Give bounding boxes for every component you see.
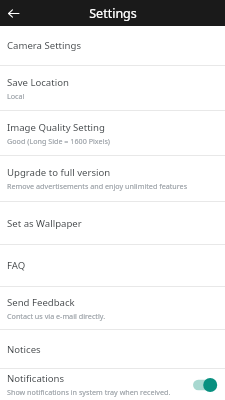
button[interactable]: FAQ — [0, 245, 225, 286]
staticText: Image Quality Setting — [7, 121, 105, 134]
button[interactable]: Set as Wallpaper — [0, 202, 225, 244]
staticText: Save Location — [7, 76, 69, 89]
button[interactable]: Camera Settings — [0, 26, 225, 65]
button[interactable]: Back — [0, 0, 26, 26]
button[interactable]: Send Feedback — [0, 287, 225, 329]
staticText: Show notifications in system tray when r… — [7, 387, 171, 397]
staticText: Notices — [7, 343, 41, 356]
staticText: Good (Long Side = 1600 Pixels) — [7, 136, 111, 146]
staticText: Upgrade to full version — [7, 166, 111, 179]
button[interactable]: Save Location — [0, 66, 225, 110]
staticText: Settings — [89, 5, 137, 22]
button[interactable]: Upgrade to full version — [0, 156, 225, 201]
staticText: Camera Settings — [7, 39, 81, 52]
staticText: Contact us via e-mail directly. — [7, 311, 106, 321]
staticText: Remove advertisements and enjoy unlimite… — [7, 181, 188, 191]
button[interactable]: Notices — [0, 330, 225, 368]
button[interactable]: Image Quality Setting — [0, 111, 225, 155]
staticText: Notifications — [7, 372, 65, 385]
button[interactable]: Notifications toggle — [192, 376, 218, 394]
staticText: Set as Wallpaper — [7, 217, 82, 230]
staticText: Local — [7, 91, 25, 101]
staticText: Send Feedback — [7, 296, 75, 309]
staticText: FAQ — [7, 259, 26, 272]
button[interactable]: Notifications — [0, 369, 225, 400]
